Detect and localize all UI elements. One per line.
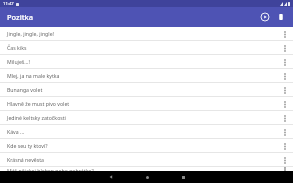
- button[interactable]: Jediné keltsky zatočkosti: [0, 111, 293, 124]
- button[interactable]: Kde seu ty ktoví?: [0, 139, 293, 152]
- button[interactable]: Item options: [279, 84, 291, 96]
- button[interactable]: Item options: [279, 98, 291, 110]
- button[interactable]: Play: [257, 9, 273, 25]
- staticText: Mlej, ja na male kytka: [7, 72, 279, 79]
- button[interactable]: Item options: [279, 126, 291, 138]
- staticText: Hlavně že must pivo volet: [7, 100, 279, 107]
- button[interactable]: Item options: [279, 154, 291, 166]
- button[interactable]: Item options: [279, 70, 291, 82]
- staticText: Miluješ...!: [7, 58, 279, 65]
- staticText: Bunanga volet: [7, 86, 279, 93]
- button[interactable]: Home: [129, 171, 165, 183]
- button[interactable]: Item options: [279, 167, 291, 171]
- button[interactable]: Recent apps: [165, 171, 201, 183]
- staticText: Pozitka: [7, 12, 34, 22]
- staticText: Krásná nevěsta: [7, 156, 279, 163]
- button[interactable]: Item options: [279, 42, 291, 54]
- staticText: Jediné keltsky zatočkosti: [7, 114, 279, 121]
- button[interactable]: Krásná nevěsta: [0, 153, 293, 166]
- staticText: Jingle, jingle, jingle!: [7, 30, 279, 37]
- button[interactable]: Mlej, ja na male kytka: [0, 69, 293, 82]
- button[interactable]: Jingle, jingle, jingle!: [0, 27, 293, 40]
- staticText: 11:47: [3, 1, 14, 7]
- button[interactable]: Item options: [279, 112, 291, 124]
- button[interactable]: Miluješ...!: [0, 55, 293, 68]
- staticText: Čas kiks: [7, 44, 279, 51]
- button[interactable]: Hlavně že must pivo volet: [0, 97, 293, 110]
- staticText: Káva ...: [7, 128, 279, 135]
- button[interactable]: Item options: [279, 56, 291, 68]
- staticText: Máš nějakej hleben nebo pohrátko?: [7, 167, 279, 171]
- staticText: Kde seu ty ktoví?: [7, 142, 279, 149]
- button[interactable]: Bunanga volet: [0, 83, 293, 96]
- button[interactable]: Čas kiks: [0, 41, 293, 54]
- button[interactable]: Máš nějakej hleben nebo pohrátko?: [0, 167, 293, 171]
- button[interactable]: Back: [93, 171, 129, 183]
- button[interactable]: Item options: [279, 140, 291, 152]
- button[interactable]: Káva ...: [0, 125, 293, 138]
- button[interactable]: More options: [273, 9, 289, 25]
- button[interactable]: Item options: [279, 28, 291, 40]
